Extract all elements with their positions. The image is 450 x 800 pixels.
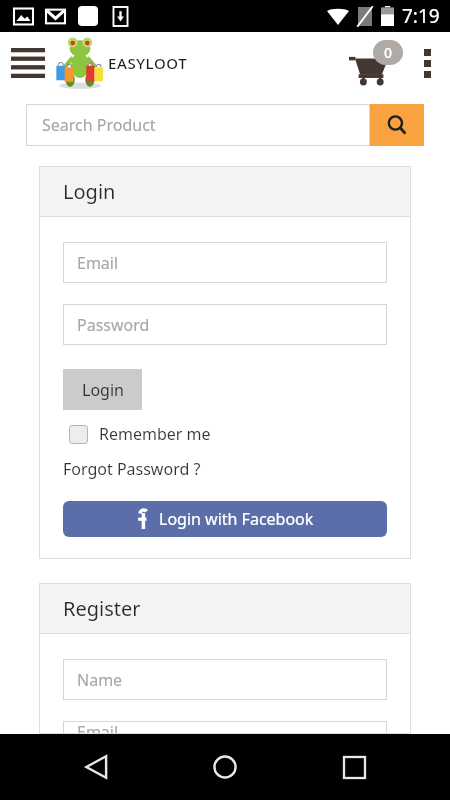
staticText: 0 xyxy=(384,43,393,62)
button[interactable]: Remember me xyxy=(69,423,211,445)
staticText: Login xyxy=(63,178,116,205)
staticText: Login with Facebook xyxy=(159,508,314,530)
button[interactable]: Email xyxy=(63,721,387,734)
button[interactable]: Recent apps xyxy=(321,734,387,800)
staticText: Login xyxy=(82,379,124,401)
button[interactable]: Login xyxy=(63,369,142,410)
staticText: Forgot Password ? xyxy=(63,458,201,480)
button[interactable]: Login with Facebook xyxy=(63,501,387,537)
button[interactable]: Search Product xyxy=(26,104,370,146)
staticText: Search Product xyxy=(42,114,156,136)
button[interactable]: More options xyxy=(410,39,444,87)
button[interactable]: Search xyxy=(370,104,424,146)
staticText: Name xyxy=(77,669,123,691)
button[interactable]: Home xyxy=(192,734,258,800)
staticText: 7:19 xyxy=(402,3,440,29)
button[interactable]: EASYLOOT xyxy=(54,36,188,90)
button[interactable]: Back xyxy=(63,734,129,800)
button[interactable]: Name xyxy=(63,659,387,700)
staticText: Password xyxy=(77,314,150,336)
staticText: Email xyxy=(77,252,119,274)
button[interactable]: Email xyxy=(63,242,387,283)
button[interactable]: Menu xyxy=(6,41,50,85)
staticText: EASYLOOT xyxy=(108,53,188,73)
staticText: Remember me xyxy=(99,423,211,445)
staticText: Email xyxy=(77,721,119,734)
staticText: Register xyxy=(63,595,141,622)
button[interactable]: Password xyxy=(63,304,387,345)
button[interactable]: Cart xyxy=(348,37,410,89)
button[interactable]: Forgot Password ? xyxy=(63,458,201,480)
